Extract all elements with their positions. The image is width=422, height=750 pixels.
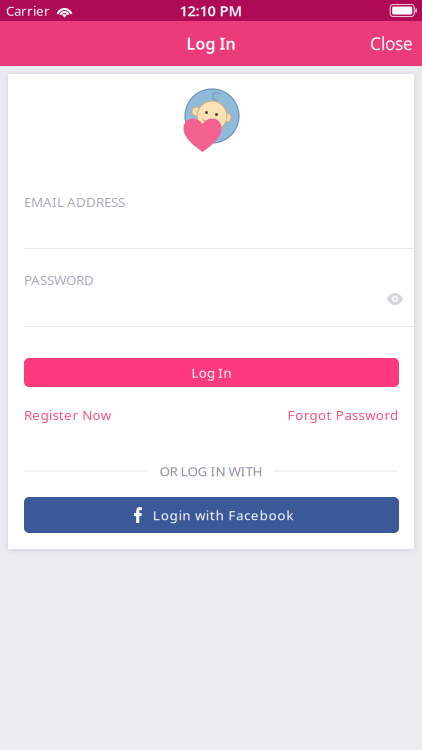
- button[interactable]: Log In: [24, 358, 399, 387]
- staticText: Login with Facebook: [153, 506, 293, 524]
- staticText: PASSWORD: [24, 271, 94, 289]
- staticText: Log In: [191, 364, 231, 381]
- staticText: Register Now: [24, 406, 111, 424]
- button[interactable]: Forgot Password: [288, 406, 398, 424]
- staticText: Forgot Password: [288, 406, 398, 424]
- staticText: 12:10 PM: [179, 1, 242, 20]
- staticText: OR LOG IN WITH: [159, 462, 262, 480]
- staticText: EMAIL ADDRESS: [24, 193, 125, 211]
- button[interactable]: Register Now: [24, 406, 111, 424]
- button[interactable]: Show password: [380, 286, 410, 312]
- button[interactable]: Close: [361, 22, 422, 65]
- staticText: Carrier: [6, 2, 50, 19]
- staticText: Close: [370, 32, 413, 55]
- staticText: Log In: [186, 33, 235, 54]
- button[interactable]: Login with Facebook: [24, 497, 399, 533]
